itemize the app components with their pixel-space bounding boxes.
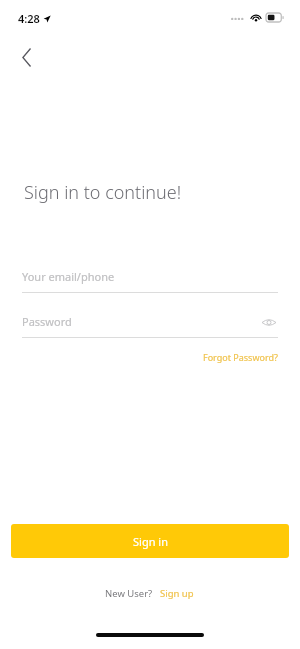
staticText: New User? (105, 587, 153, 600)
button[interactable]: Sign up (158, 585, 196, 602)
button[interactable]: Back (8, 39, 44, 75)
button[interactable]: Sign in (11, 524, 289, 558)
button[interactable]: Password (22, 311, 278, 338)
staticText: Forgot Password? (203, 351, 278, 363)
staticText: 4:28 (18, 11, 40, 26)
staticText: Password (22, 314, 72, 329)
staticText: Sign in (133, 534, 168, 549)
staticText: Your email/phone (22, 269, 115, 284)
staticText: Sign in to continue! (24, 180, 182, 205)
other: Show password (260, 313, 278, 331)
staticText: Sign up (160, 587, 194, 600)
button[interactable]: Forgot Password? (201, 349, 280, 365)
button[interactable]: Your email/phone (22, 266, 278, 293)
